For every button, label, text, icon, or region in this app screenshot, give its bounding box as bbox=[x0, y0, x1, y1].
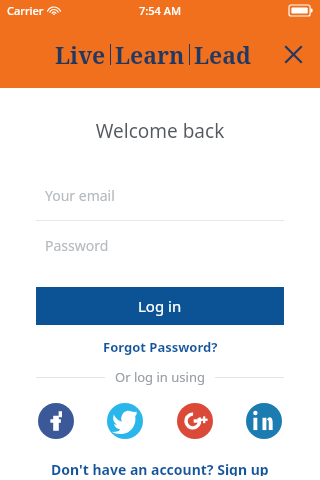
staticText: Or log in using bbox=[115, 368, 205, 386]
button[interactable]: Forgot Password? bbox=[0, 333, 320, 361]
button[interactable]: Log in with Facebook bbox=[38, 403, 74, 439]
button[interactable]: Log in with LinkedIn bbox=[246, 403, 282, 439]
button[interactable]: Close bbox=[278, 39, 308, 69]
button[interactable]: Log in with Google bbox=[177, 403, 213, 439]
staticText: 7:54 AM bbox=[139, 3, 182, 18]
staticText: Welcome back bbox=[0, 118, 320, 144]
staticText: Learn bbox=[115, 39, 185, 70]
button[interactable]: Don't have an account? Sign up bbox=[0, 456, 320, 480]
staticText: Lead bbox=[194, 39, 251, 70]
staticText: Forgot Password? bbox=[103, 338, 218, 356]
staticText: Don't have an account? Sign up bbox=[51, 460, 269, 476]
staticText: Live bbox=[55, 39, 106, 70]
staticText: Your email bbox=[45, 186, 115, 205]
staticText: Log in bbox=[138, 296, 182, 316]
button[interactable]: Log in with Twitter bbox=[107, 403, 143, 439]
button[interactable]: Password bbox=[36, 221, 284, 270]
button[interactable]: Your email bbox=[36, 171, 284, 220]
staticText: Carrier bbox=[7, 3, 44, 18]
button[interactable]: Log in bbox=[36, 287, 284, 325]
staticText: Password bbox=[45, 236, 109, 255]
